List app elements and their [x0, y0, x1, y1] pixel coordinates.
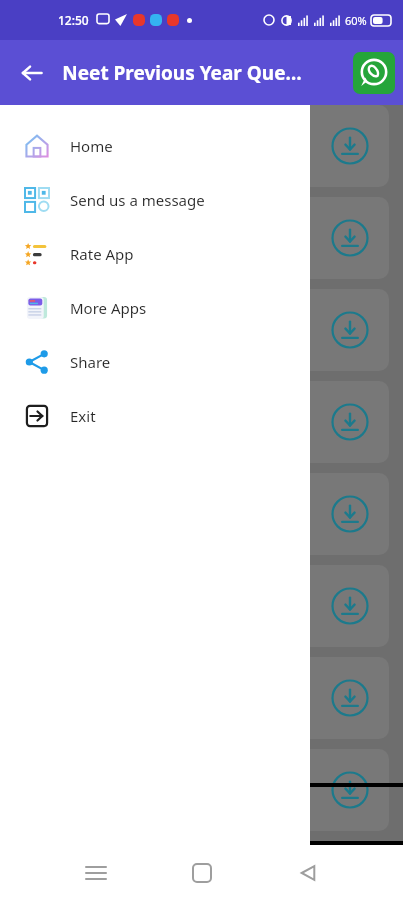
staticText: 60% [345, 13, 367, 28]
button[interactable] [8, 657, 389, 739]
button[interactable]: Recents [73, 850, 119, 896]
staticText: Neet Previous Year Que… [62, 60, 302, 86]
staticText: Rate App [70, 244, 134, 264]
staticText: Home [70, 136, 113, 156]
button[interactable]: Back [285, 850, 331, 896]
staticText: Exit [70, 406, 96, 426]
staticText: 12:50 [58, 12, 89, 28]
button[interactable]: More Apps [0, 281, 310, 335]
staticText: Share [70, 352, 111, 372]
button[interactable]: WhatsApp [353, 52, 395, 94]
button[interactable] [8, 565, 389, 647]
button[interactable] [8, 381, 389, 463]
button[interactable] [8, 749, 389, 831]
button[interactable]: Back [10, 51, 54, 95]
staticText: Send us a message [70, 190, 205, 210]
button[interactable] [8, 105, 389, 187]
button[interactable] [8, 289, 389, 371]
button[interactable]: Rate App [0, 227, 310, 281]
button[interactable] [8, 473, 389, 555]
button[interactable]: Home [0, 119, 310, 173]
button[interactable]: Share [0, 335, 310, 389]
button[interactable]: Exit [0, 389, 310, 443]
staticText: More Apps [70, 298, 147, 318]
button[interactable]: Send us a message [0, 173, 310, 227]
button[interactable] [8, 197, 389, 279]
button[interactable]: Home [179, 850, 225, 896]
